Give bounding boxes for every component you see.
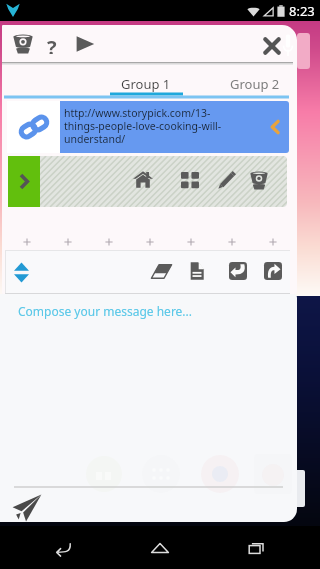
button[interactable]: http://www.storypick.com/13- things-peop… bbox=[60, 101, 289, 153]
staticText: http://www.storypick.com/13- things-peop… bbox=[64, 106, 222, 146]
button[interactable]: Apps bbox=[181, 172, 199, 188]
button[interactable]: Send bbox=[11, 492, 43, 522]
staticText: Group 1 bbox=[121, 75, 171, 93]
button[interactable]: Add bbox=[102, 235, 116, 249]
button[interactable]: Add bbox=[266, 235, 280, 249]
button[interactable]: Close bbox=[260, 34, 284, 58]
staticText: Group 2 bbox=[230, 75, 280, 93]
button[interactable]: Add bbox=[225, 235, 239, 249]
button[interactable]: Add bbox=[61, 235, 75, 249]
button[interactable]: Erase bbox=[151, 264, 172, 279]
button[interactable]: Play bbox=[73, 34, 97, 54]
button[interactable]: Sort bbox=[14, 262, 29, 283]
button[interactable]: Group 2 bbox=[230, 72, 297, 96]
button[interactable]: Home bbox=[145, 533, 175, 563]
staticText: Compose your message here... bbox=[18, 303, 193, 319]
button[interactable]: Group 1 bbox=[108, 72, 184, 96]
button[interactable]: Document bbox=[190, 262, 204, 280]
button[interactable]: Repository bbox=[13, 34, 33, 54]
button[interactable]: Add bbox=[20, 235, 34, 249]
button[interactable]: Repository bbox=[250, 171, 268, 190]
button[interactable]: Link bbox=[7, 101, 60, 153]
staticText: 8:23 bbox=[289, 2, 315, 20]
button[interactable]: Redo bbox=[264, 262, 282, 280]
staticText: ? bbox=[47, 34, 57, 54]
button[interactable]: Expand bbox=[8, 156, 40, 207]
button[interactable]: Undo bbox=[229, 262, 247, 280]
button[interactable]: Help bbox=[43, 34, 61, 54]
button[interactable]: Compose your message here... bbox=[0, 294, 297, 522]
button[interactable]: Home bbox=[133, 171, 153, 188]
button[interactable]: Back bbox=[48, 533, 78, 563]
button[interactable]: Edit bbox=[218, 171, 236, 189]
button[interactable]: Recents bbox=[242, 533, 272, 563]
button[interactable]: Previous bbox=[268, 120, 282, 134]
button[interactable]: Add bbox=[143, 235, 157, 249]
button[interactable]: Add bbox=[184, 235, 198, 249]
